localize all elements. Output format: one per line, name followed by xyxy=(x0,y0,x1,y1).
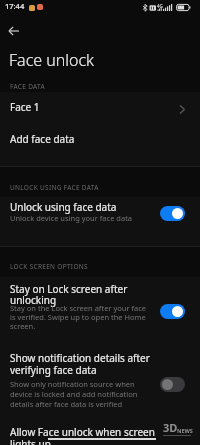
staticText: 17:44 xyxy=(5,1,25,11)
staticText: Face 1 xyxy=(10,100,190,114)
staticText: 4G xyxy=(157,3,163,9)
button[interactable]: Add face data xyxy=(0,128,200,154)
staticText: NEWS xyxy=(177,427,193,434)
button[interactable]: Stay on Lock screen after unlocking xyxy=(0,280,200,335)
staticText: FACE DATA xyxy=(10,82,46,91)
staticText: Add face data xyxy=(10,132,190,146)
staticText: Stay on the Lock screen after your face … xyxy=(10,303,152,332)
button[interactable]: Allow Face unlock when screen lights up xyxy=(0,423,200,445)
staticText: Unlock device using your face data xyxy=(10,213,190,223)
button[interactable]: Unlock using face data xyxy=(0,197,200,229)
staticText: Face unlock xyxy=(9,49,94,71)
staticText: Allow Face unlock when screen lights up xyxy=(10,425,160,445)
button[interactable] xyxy=(160,377,185,392)
button[interactable]: Face 1 xyxy=(0,96,200,122)
staticText: Show notification details after verifyin… xyxy=(10,351,158,377)
staticText: LOCK SCREEN OPTIONS xyxy=(10,262,88,271)
button[interactable] xyxy=(5,22,23,40)
button[interactable] xyxy=(160,304,185,319)
button[interactable] xyxy=(160,206,185,221)
staticText: UNLOCK USING FACE DATA xyxy=(10,183,99,192)
staticText: Unlock using face data xyxy=(10,200,190,214)
staticText: Stay on Lock screen after unlocking xyxy=(10,282,155,307)
staticText: Show only notification source when devic… xyxy=(10,379,150,409)
button[interactable]: Show notification details after verifyin… xyxy=(0,349,200,414)
staticText: 3D xyxy=(163,420,178,435)
